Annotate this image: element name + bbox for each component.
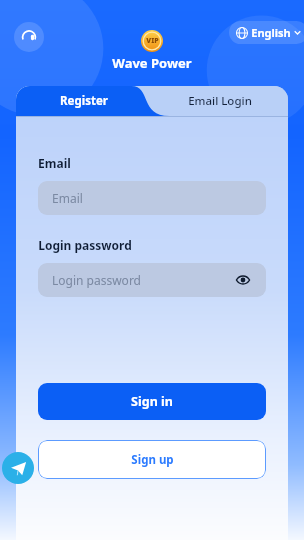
staticText: Email Login (188, 93, 252, 109)
button[interactable]: Customer support (14, 22, 44, 52)
staticText: Wave Power (112, 54, 192, 72)
staticText: Register (60, 93, 108, 109)
button[interactable]: Register (16, 86, 152, 116)
staticText: Sign in (131, 393, 173, 410)
staticText: English (251, 25, 291, 40)
button[interactable]: Email Login (152, 86, 288, 116)
button[interactable]: Login password (38, 263, 266, 297)
staticText: Sign up (131, 452, 174, 468)
staticText: VIP (146, 36, 159, 46)
staticText: Email (52, 190, 83, 206)
button[interactable]: Telegram (2, 452, 34, 484)
button[interactable]: Sign in (38, 383, 266, 420)
staticText: Email (38, 155, 71, 171)
button[interactable]: Sign up (38, 440, 266, 479)
button[interactable]: English (229, 21, 304, 44)
staticText: Login password (52, 272, 141, 288)
other: Show password (236, 273, 250, 287)
staticText: Login password (38, 237, 132, 253)
button[interactable]: Email (38, 181, 266, 215)
